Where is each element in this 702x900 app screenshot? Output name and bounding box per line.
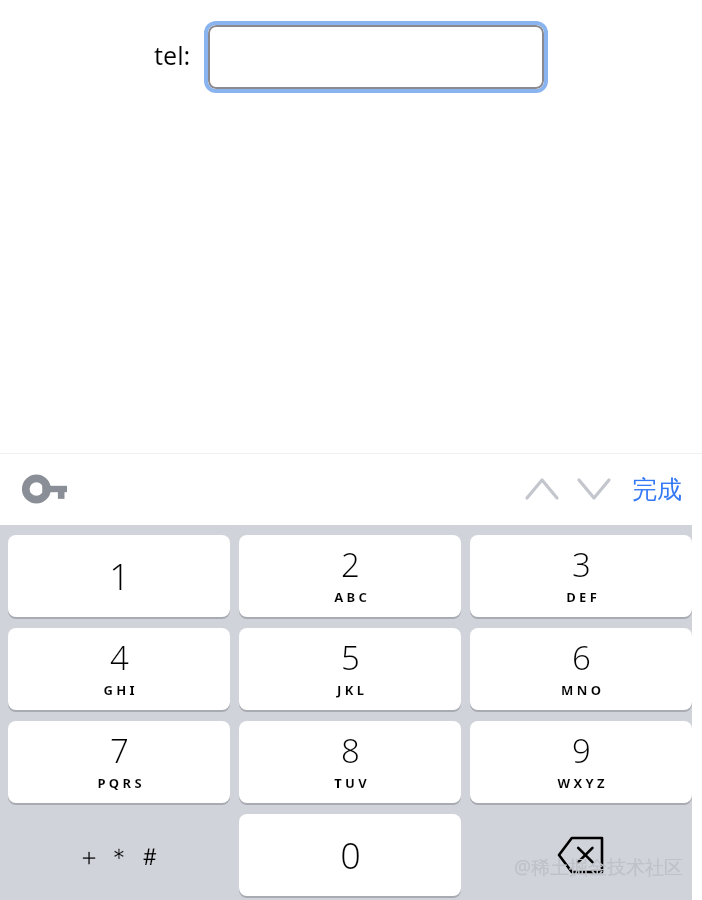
staticText: P Q R S [97, 774, 142, 792]
staticText: ＋ ＊ ＃ [77, 839, 162, 872]
staticText: 1 [109, 552, 130, 601]
staticText: tel: [154, 38, 191, 72]
button[interactable]: 1 [8, 535, 230, 617]
button[interactable]: 4 [8, 628, 230, 710]
button[interactable]: Passwords [18, 465, 74, 513]
button[interactable] [204, 21, 548, 93]
staticText: 4 [110, 635, 129, 680]
button[interactable]: Previous field [516, 465, 568, 513]
staticText: D E F [566, 588, 597, 606]
button[interactable]: Next field [568, 465, 620, 513]
staticText: 6 [572, 635, 591, 680]
staticText: 9 [572, 728, 591, 773]
button[interactable]: 3 [470, 535, 692, 617]
staticText: W X Y Z [557, 774, 605, 792]
button[interactable]: 2 [239, 535, 461, 617]
staticText: G H I [103, 681, 135, 699]
button[interactable]: ＋ ＊ ＃ [8, 814, 230, 896]
button[interactable]: Delete [470, 814, 692, 896]
button[interactable]: 6 [470, 628, 692, 710]
staticText: 3 [572, 542, 591, 587]
staticText: M N O [561, 681, 601, 699]
staticText: 2 [341, 542, 360, 587]
button[interactable]: 0 [239, 814, 461, 896]
staticText: J K L [337, 681, 364, 699]
staticText: @稀土掘金技术社区 [514, 854, 684, 880]
staticText: 8 [341, 728, 360, 773]
button[interactable]: 9 [470, 721, 692, 803]
button[interactable]: 7 [8, 721, 230, 803]
staticText: 7 [110, 728, 129, 773]
button[interactable]: 8 [239, 721, 461, 803]
staticText: 5 [341, 635, 360, 680]
staticText: T U V [334, 774, 367, 792]
staticText: 完成 [632, 474, 682, 505]
button[interactable]: 5 [239, 628, 461, 710]
staticText: A B C [334, 588, 367, 606]
button[interactable]: 完成 [632, 474, 682, 505]
staticText: 0 [340, 831, 361, 880]
